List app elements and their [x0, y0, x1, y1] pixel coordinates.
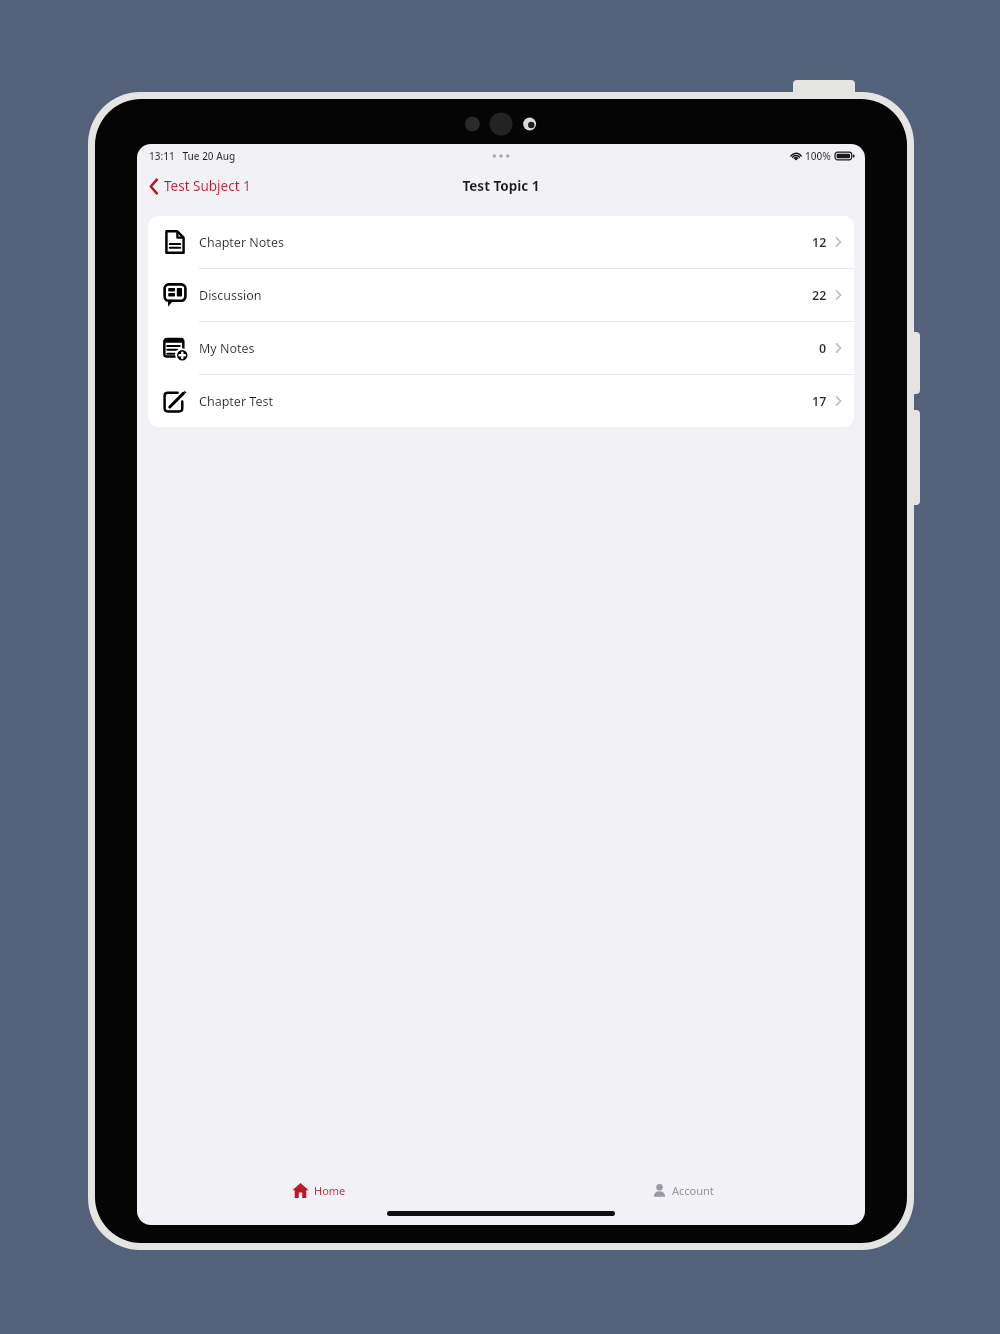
- staticText: 100%: [805, 149, 831, 163]
- button[interactable]: Chapter Notes: [148, 216, 854, 268]
- staticText: Home: [314, 1183, 346, 1198]
- button[interactable]: Test Subject 1: [143, 173, 257, 199]
- staticText: Chapter Test: [199, 393, 273, 410]
- staticText: 17: [812, 393, 827, 410]
- button[interactable]: Home: [137, 1173, 501, 1207]
- button[interactable]: Account: [501, 1173, 865, 1207]
- staticText: 12: [812, 234, 827, 251]
- staticText: Discussion: [199, 287, 262, 304]
- staticText: My Notes: [199, 340, 255, 357]
- staticText: 0: [819, 340, 827, 357]
- staticText: 13:11 Tue 20 Aug: [149, 149, 236, 163]
- button[interactable]: My Notes: [148, 322, 854, 374]
- staticText: 22: [812, 287, 827, 304]
- staticText: Test Subject 1: [164, 177, 251, 195]
- staticText: Account: [672, 1183, 714, 1198]
- staticText: Chapter Notes: [199, 234, 284, 251]
- staticText: Test Topic 1: [462, 177, 540, 195]
- button[interactable]: Discussion: [148, 269, 854, 321]
- button[interactable]: Chapter Test: [148, 375, 854, 427]
